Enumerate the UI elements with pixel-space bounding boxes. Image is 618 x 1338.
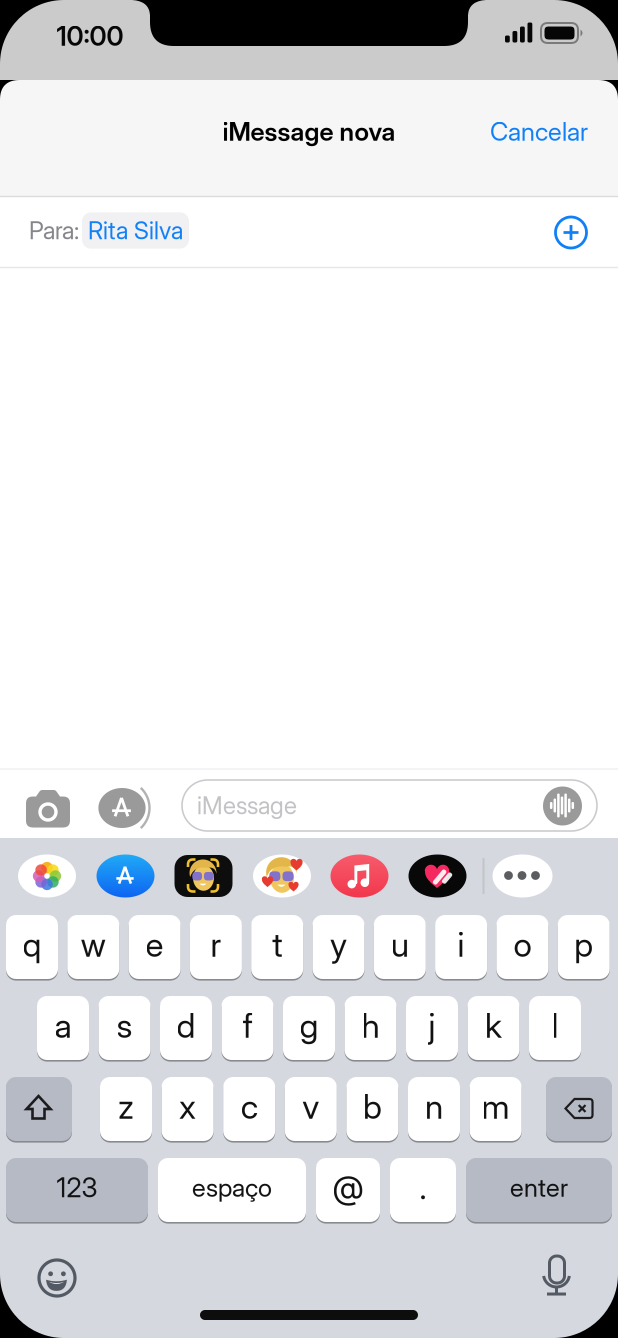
- staticText: Cancelar: [490, 117, 588, 146]
- staticText: p: [574, 925, 593, 964]
- button[interactable]: b: [346, 1076, 398, 1142]
- button[interactable]: h: [344, 995, 396, 1061]
- staticText: e: [146, 925, 164, 964]
- button[interactable]: p: [558, 914, 610, 980]
- staticText: i: [458, 925, 465, 964]
- button[interactable]: espaço: [158, 1157, 306, 1223]
- button[interactable]: Ditar: [529, 1250, 585, 1306]
- staticText: x: [179, 1087, 196, 1126]
- staticText: f: [242, 1006, 252, 1045]
- staticText: 123: [56, 1172, 97, 1203]
- button[interactable]: o: [496, 914, 548, 980]
- staticText: q: [22, 925, 41, 964]
- button[interactable]: y: [312, 914, 364, 980]
- staticText: iMessage nova: [222, 117, 395, 146]
- button[interactable]: Apps do iMessage: [96, 785, 148, 831]
- button[interactable]: Campo de mensagem iMessage: [182, 780, 597, 831]
- button[interactable]: c: [223, 1076, 275, 1142]
- button[interactable]: Digital Touch: [406, 853, 468, 899]
- button[interactable]: u: [374, 914, 426, 980]
- staticText: 10:00: [56, 20, 123, 52]
- button[interactable]: Mensagem de áudio: [543, 786, 582, 825]
- button[interactable]: d: [160, 995, 212, 1061]
- button[interactable]: Emoji: [29, 1250, 85, 1306]
- staticText: z: [118, 1087, 134, 1126]
- staticText: h: [361, 1006, 379, 1045]
- button[interactable]: Apagar: [546, 1076, 612, 1142]
- staticText: o: [513, 925, 531, 964]
- button[interactable]: q: [6, 914, 58, 980]
- button[interactable]: @: [316, 1157, 380, 1223]
- staticText: enter: [510, 1173, 568, 1202]
- button[interactable]: App Store: [94, 853, 156, 899]
- button[interactable]: i: [435, 914, 487, 980]
- button[interactable]: s: [98, 995, 150, 1061]
- button[interactable]: Rita Silva: [82, 212, 189, 249]
- button[interactable]: z: [100, 1076, 152, 1142]
- staticText: b: [363, 1087, 382, 1126]
- button[interactable]: Cancelar: [490, 117, 588, 146]
- button[interactable]: Fotografias: [16, 853, 78, 899]
- button[interactable]: r: [190, 914, 242, 980]
- staticText: w: [81, 925, 106, 964]
- staticText: Para:: [29, 216, 79, 245]
- staticText: l: [551, 1006, 558, 1045]
- button[interactable]: enter: [466, 1157, 612, 1223]
- button[interactable]: Mais apps: [491, 853, 553, 899]
- staticText: g: [299, 1006, 318, 1045]
- staticText: a: [54, 1006, 71, 1045]
- button[interactable]: k: [467, 995, 519, 1061]
- button[interactable]: g: [283, 995, 335, 1061]
- button[interactable]: x: [162, 1076, 214, 1142]
- staticText: iMessage: [197, 791, 297, 820]
- button[interactable]: t: [251, 914, 303, 980]
- button[interactable]: f: [221, 995, 273, 1061]
- staticText: v: [302, 1087, 319, 1126]
- staticText: Rita Silva: [88, 216, 183, 245]
- button[interactable]: v: [285, 1076, 337, 1142]
- button[interactable]: Música: [328, 853, 390, 899]
- button[interactable]: Shift: [6, 1076, 72, 1142]
- staticText: m: [482, 1087, 510, 1126]
- staticText: d: [176, 1006, 195, 1045]
- button[interactable]: Adicionar contacto: [549, 210, 593, 254]
- staticText: .: [419, 1169, 426, 1206]
- staticText: j: [428, 1006, 435, 1045]
- button[interactable]: m: [470, 1076, 522, 1142]
- staticText: t: [272, 925, 282, 964]
- button[interactable]: .: [390, 1157, 456, 1223]
- staticText: @: [332, 1169, 363, 1206]
- button[interactable]: n: [408, 1076, 460, 1142]
- button[interactable]: e: [129, 914, 181, 980]
- button[interactable]: w: [67, 914, 119, 980]
- staticText: s: [116, 1006, 132, 1045]
- button[interactable]: Câmara: [20, 785, 76, 833]
- staticText: y: [330, 925, 347, 964]
- staticText: r: [210, 925, 221, 964]
- staticText: n: [425, 1087, 443, 1126]
- button[interactable]: 123: [6, 1157, 148, 1223]
- button[interactable]: Memoji: [172, 853, 234, 899]
- staticText: espaço: [192, 1173, 272, 1202]
- button[interactable]: a: [37, 995, 89, 1061]
- button[interactable]: l: [529, 995, 581, 1061]
- button[interactable]: Autocolantes Memoji: [251, 853, 313, 899]
- button[interactable]: j: [406, 995, 458, 1061]
- staticText: k: [485, 1006, 502, 1045]
- staticText: u: [391, 925, 409, 964]
- staticText: c: [241, 1087, 258, 1126]
